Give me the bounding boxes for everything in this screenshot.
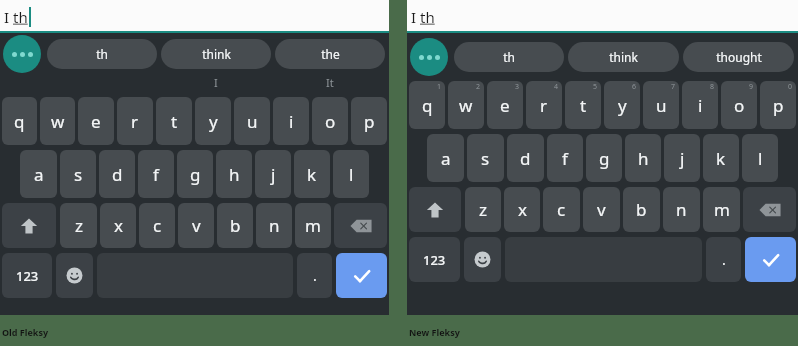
button[interactable]: q xyxy=(2,97,37,145)
button[interactable]: m xyxy=(295,203,331,248)
button[interactable]: l xyxy=(333,150,369,198)
button[interactable]: o xyxy=(721,81,757,129)
staticText: think xyxy=(609,49,638,65)
button[interactable]: l xyxy=(742,134,778,182)
button[interactable]: think xyxy=(568,42,679,72)
button[interactable]: n xyxy=(256,203,292,248)
button[interactable]: w xyxy=(40,97,75,145)
staticText: e xyxy=(500,94,510,117)
button[interactable]: r xyxy=(117,97,153,145)
button[interactable]: u xyxy=(643,81,679,129)
staticText: . xyxy=(722,250,726,269)
staticText: 6 xyxy=(632,82,637,92)
staticText: I xyxy=(4,7,13,27)
button[interactable]: d xyxy=(99,150,135,198)
button[interactable]: . xyxy=(297,253,332,298)
button[interactable]: h xyxy=(625,134,661,182)
button[interactable]: th xyxy=(454,42,564,72)
button[interactable]: t xyxy=(565,81,601,129)
button[interactable]: j xyxy=(664,134,700,182)
button[interactable]: c xyxy=(139,203,175,248)
button[interactable]: d xyxy=(507,134,544,182)
button[interactable]: p xyxy=(351,97,387,145)
button[interactable]: e xyxy=(487,81,523,129)
button[interactable]: Emoji xyxy=(464,237,501,282)
button[interactable]: x xyxy=(100,203,136,248)
button[interactable]: Shift xyxy=(409,187,461,232)
staticText: v xyxy=(192,214,201,237)
button[interactable]: Enter xyxy=(745,237,796,282)
staticText: j xyxy=(680,147,685,170)
staticText: c xyxy=(557,198,566,221)
staticText: . xyxy=(313,266,317,285)
button[interactable]: b xyxy=(623,187,660,232)
button[interactable]: thought xyxy=(683,42,794,72)
button[interactable]: Emoji xyxy=(56,253,93,298)
button[interactable]: k xyxy=(703,134,739,182)
button[interactable]: r xyxy=(526,81,562,129)
button[interactable]: g xyxy=(177,150,213,198)
button[interactable]: Shift xyxy=(2,203,56,248)
button[interactable]: c xyxy=(543,187,580,232)
staticText: f xyxy=(562,147,568,170)
button[interactable]: a xyxy=(427,134,464,182)
button[interactable]: m xyxy=(703,187,740,232)
staticText: 7 xyxy=(671,82,676,92)
button[interactable]: p xyxy=(760,81,796,129)
button[interactable]: y xyxy=(195,97,231,145)
button[interactable]: a xyxy=(20,150,57,198)
button[interactable]: More options xyxy=(3,35,41,73)
button[interactable]: n xyxy=(663,187,700,232)
button[interactable]: th xyxy=(47,39,157,69)
button[interactable]: Backspace xyxy=(743,187,796,232)
staticText: r xyxy=(131,110,139,133)
button[interactable]: k xyxy=(294,150,330,198)
button[interactable]: i xyxy=(682,81,718,129)
button[interactable]: v xyxy=(178,203,214,248)
staticText: t xyxy=(171,110,178,133)
staticText: thought xyxy=(716,49,762,65)
staticText: New Fleksy xyxy=(409,326,460,338)
button[interactable]: the xyxy=(275,39,385,69)
button[interactable]: w xyxy=(448,81,484,129)
staticText: d xyxy=(112,163,123,186)
button[interactable]: Enter xyxy=(336,253,387,298)
button[interactable]: . xyxy=(706,237,741,282)
button[interactable]: u xyxy=(234,97,270,145)
staticText: a xyxy=(34,163,44,186)
button[interactable]: h xyxy=(216,150,252,198)
button[interactable]: q xyxy=(409,81,445,129)
button[interactable]: b xyxy=(217,203,253,248)
button[interactable]: think xyxy=(161,39,271,69)
button[interactable]: v xyxy=(583,187,620,232)
staticText: v xyxy=(597,198,606,221)
button[interactable]: Backspace xyxy=(334,203,387,248)
button[interactable]: i xyxy=(273,97,309,145)
button[interactable]: g xyxy=(586,134,622,182)
button[interactable]: y xyxy=(604,81,640,129)
button[interactable]: More options xyxy=(410,38,448,76)
staticText: th xyxy=(420,7,435,27)
staticText: b xyxy=(636,198,647,221)
staticText: g xyxy=(599,147,610,170)
staticText: m xyxy=(305,214,321,237)
staticText: 2 xyxy=(476,82,481,92)
button[interactable]: f xyxy=(547,134,583,182)
button[interactable]: e xyxy=(78,97,114,145)
button[interactable]: 123 xyxy=(409,237,460,282)
button[interactable]: t xyxy=(156,97,192,145)
button[interactable]: s xyxy=(467,134,504,182)
button[interactable]: x xyxy=(504,187,540,232)
button[interactable]: z xyxy=(60,203,97,248)
staticText: k xyxy=(307,163,317,186)
staticText: 123 xyxy=(423,251,446,269)
button[interactable]: f xyxy=(138,150,174,198)
button[interactable]: 123 xyxy=(2,253,52,298)
button[interactable]: s xyxy=(60,150,96,198)
button[interactable]: j xyxy=(255,150,291,198)
button[interactable]: z xyxy=(465,187,501,232)
button[interactable]: o xyxy=(312,97,348,145)
staticText: 123 xyxy=(16,267,39,285)
